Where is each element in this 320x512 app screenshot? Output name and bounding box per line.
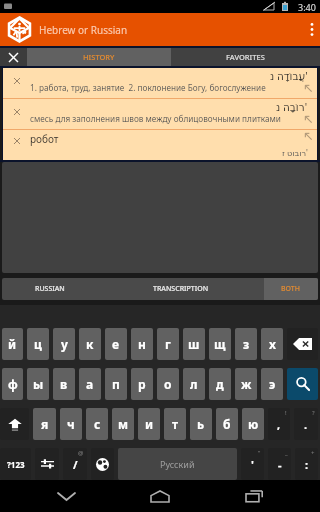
button[interactable]: More options <box>304 13 320 46</box>
button[interactable]: App icon <box>7 17 32 42</box>
staticText: FAVORITES <box>226 52 265 62</box>
button[interactable]: з <box>235 328 257 360</box>
staticText: Русский <box>160 458 195 470</box>
button[interactable]: ш <box>183 328 205 360</box>
button[interactable]: RUSSIAN <box>2 278 97 300</box>
staticText: з <box>243 336 250 352</box>
staticText: у <box>61 336 68 352</box>
button[interactable]: Русский <box>118 448 237 480</box>
staticText: : <box>305 457 309 472</box>
button[interactable]: м <box>112 408 134 440</box>
button[interactable]: : <box>295 448 318 480</box>
staticText: / <box>73 457 78 472</box>
staticText: я <box>41 416 49 432</box>
button[interactable]: Search <box>287 368 318 400</box>
button[interactable]: в <box>53 368 75 400</box>
staticText: м <box>118 416 129 432</box>
button[interactable]: ' <box>241 448 264 480</box>
button[interactable]: ь <box>190 408 212 440</box>
button[interactable]: д <box>209 368 231 400</box>
staticText: ' <box>251 457 254 472</box>
staticText: רוֹבָה נ' <box>276 100 308 114</box>
button[interactable]: о <box>157 368 179 400</box>
button[interactable]: р <box>131 368 153 400</box>
button[interactable]: Close <box>0 48 27 66</box>
staticText: ш <box>188 336 200 352</box>
staticText: Hebrew or Russian <box>39 23 128 37</box>
staticText: к <box>86 336 94 352</box>
staticText: е <box>112 336 120 352</box>
button[interactable]: й <box>2 328 23 360</box>
button[interactable]: п <box>105 368 127 400</box>
button[interactable]: רוֹבָה נ' <box>3 99 317 129</box>
staticText: ц <box>34 336 42 352</box>
staticText: т <box>172 416 179 432</box>
staticText: ч <box>67 416 75 432</box>
button[interactable]: робот <box>3 130 317 160</box>
button[interactable]: BOTH <box>264 278 318 300</box>
staticText: ф <box>8 376 18 392</box>
button[interactable]: щ <box>209 328 231 360</box>
button[interactable]: Backspace <box>287 328 318 360</box>
button[interactable]: х <box>261 328 283 360</box>
button[interactable]: б <box>216 408 238 440</box>
button[interactable]: ы <box>27 368 49 400</box>
button[interactable]: э <box>261 368 283 400</box>
button[interactable]: т <box>164 408 186 440</box>
button[interactable]: и <box>138 408 160 440</box>
button[interactable]: у <box>53 328 75 360</box>
button[interactable]: ж <box>235 368 257 400</box>
button[interactable]: - <box>268 448 291 480</box>
button[interactable]: Shift <box>0 408 29 440</box>
button[interactable]: HISTORY <box>27 48 171 66</box>
button[interactable]: , <box>268 408 290 440</box>
button[interactable]: ?123 <box>0 448 31 480</box>
staticText: д <box>216 376 224 392</box>
button[interactable]: TRANSCRIPTION <box>97 278 264 300</box>
staticText: + <box>311 449 315 457</box>
button[interactable]: н <box>131 328 153 360</box>
button[interactable]: / <box>63 448 87 480</box>
staticText: с <box>94 416 101 432</box>
button[interactable]: Back <box>38 480 94 512</box>
button[interactable]: FAVORITES <box>171 48 320 66</box>
button[interactable]: я <box>33 408 56 440</box>
staticText: смесь для заполнения швов между облицово… <box>30 113 281 124</box>
staticText: TRANSCRIPTION <box>153 284 209 294</box>
button[interactable]: ф <box>2 368 23 400</box>
button[interactable]: Settings <box>35 448 59 480</box>
button[interactable]: Recents <box>226 480 282 512</box>
staticText: г <box>165 336 171 352</box>
button[interactable]: Home <box>132 480 188 512</box>
button[interactable]: Change language <box>91 448 114 480</box>
staticText: ы <box>33 376 44 392</box>
staticText: б <box>223 416 231 432</box>
staticText: - <box>278 457 282 472</box>
button[interactable]: а <box>79 368 101 400</box>
button[interactable]: л <box>183 368 205 400</box>
button[interactable]: ц <box>27 328 49 360</box>
button[interactable]: עֲבוֹדָה נ' <box>3 68 317 98</box>
button[interactable]: . <box>294 408 318 440</box>
button[interactable]: с <box>86 408 108 440</box>
staticText: а <box>86 376 94 392</box>
staticText: @ <box>78 449 84 457</box>
staticText: . <box>304 417 308 432</box>
button[interactable]: е <box>105 328 127 360</box>
staticText: э <box>269 376 276 392</box>
staticText: RUSSIAN <box>35 284 65 294</box>
staticText: робот <box>30 132 59 146</box>
staticText: " <box>258 449 261 457</box>
staticText: _ <box>285 449 288 457</box>
staticText: п <box>112 376 120 392</box>
staticText: н <box>138 336 146 352</box>
staticText: ?123 <box>7 459 25 470</box>
button[interactable]: г <box>157 328 179 360</box>
staticText: л <box>190 376 198 392</box>
button[interactable]: к <box>79 328 101 360</box>
button[interactable]: ю <box>242 408 264 440</box>
staticText: BOTH <box>281 284 301 294</box>
staticText: р <box>138 376 146 392</box>
button[interactable]: ч <box>60 408 82 440</box>
staticText: и <box>145 416 154 432</box>
